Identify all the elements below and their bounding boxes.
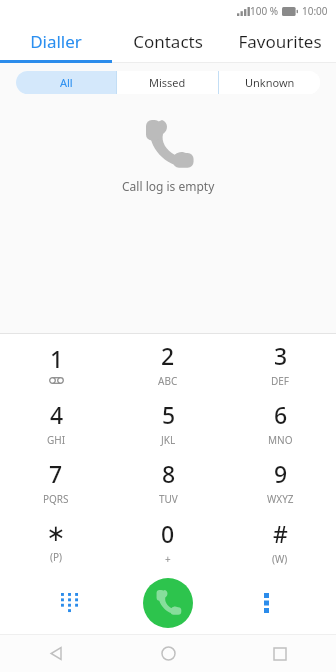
staticText: DEF — [271, 374, 290, 388]
button[interactable]: 5 — [112, 393, 224, 452]
staticText: Contacts — [133, 30, 203, 53]
button[interactable]: 3 — [224, 334, 336, 393]
staticText: 10:00 — [302, 4, 328, 18]
button[interactable]: Missed — [117, 71, 218, 94]
staticText: 100 % — [250, 4, 279, 18]
button[interactable]: 4 — [0, 393, 112, 452]
staticText: Call log is empty — [122, 178, 215, 194]
button[interactable]: ∗ — [0, 512, 112, 572]
button[interactable]: Back — [0, 635, 112, 672]
staticText: JKL — [161, 433, 176, 447]
staticText: ∗ — [46, 520, 66, 547]
staticText: 4 — [50, 399, 64, 430]
button[interactable]: 0 — [112, 512, 224, 572]
button[interactable]: 6 — [224, 393, 336, 452]
button[interactable]: All — [16, 71, 116, 94]
staticText: WXYZ — [267, 492, 294, 506]
staticText: GHI — [47, 433, 66, 447]
button[interactable]: Contacts — [112, 22, 224, 60]
staticText: 1 — [50, 343, 64, 374]
button[interactable]: Hide keypad — [52, 585, 88, 621]
button[interactable]: 8 — [112, 452, 224, 512]
button[interactable]: 1 — [0, 334, 112, 393]
staticText: MNO — [268, 433, 293, 447]
staticText: Dialler — [30, 30, 82, 53]
staticText: ABC — [158, 374, 178, 388]
staticText: 5 — [162, 399, 176, 430]
button[interactable]: Recents — [224, 635, 336, 672]
button[interactable]: 7 — [0, 452, 112, 512]
staticText: # — [273, 518, 288, 549]
staticText: Favourites — [238, 30, 322, 53]
staticText: (P) — [50, 550, 63, 564]
staticText: TUV — [159, 492, 178, 506]
button[interactable]: # — [224, 512, 336, 572]
staticText: 7 — [49, 458, 63, 489]
button[interactable]: Unknown — [219, 71, 320, 94]
button[interactable]: More options — [248, 585, 284, 621]
button[interactable]: Call — [143, 578, 193, 628]
staticText: + — [165, 552, 171, 566]
button[interactable]: Home — [112, 635, 224, 672]
staticText: 8 — [162, 458, 176, 489]
staticText: 6 — [274, 399, 288, 430]
button[interactable]: 2 — [112, 334, 224, 393]
button[interactable]: Dialler — [0, 22, 112, 60]
staticText: PQRS — [43, 492, 69, 506]
staticText: 0 — [161, 518, 175, 549]
staticText: Missed — [149, 75, 186, 90]
button[interactable]: 9 — [224, 452, 336, 512]
staticText: Unknown — [245, 75, 295, 90]
staticText: (W) — [272, 552, 288, 566]
staticText: All — [60, 75, 73, 90]
staticText: 9 — [274, 458, 288, 489]
staticText: 3 — [274, 340, 288, 371]
staticText: 2 — [161, 340, 175, 371]
button[interactable]: Favourites — [224, 22, 336, 60]
